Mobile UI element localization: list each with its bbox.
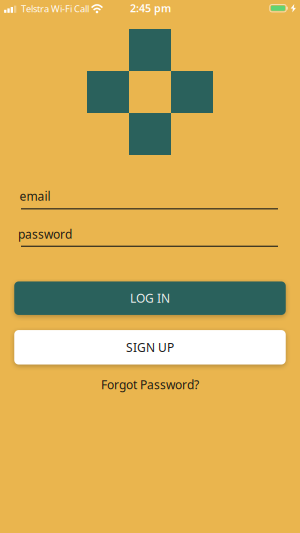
button[interactable]: SIGN UP [14, 330, 286, 365]
button[interactable]: LOG IN [14, 281, 286, 315]
staticText: password [18, 226, 72, 242]
button[interactable]: Forgot Password? [101, 376, 199, 392]
staticText: Forgot Password? [101, 376, 199, 392]
staticText: SIGN UP [126, 339, 174, 355]
staticText: LOG IN [130, 290, 170, 306]
staticText: 2:45 pm [130, 1, 171, 15]
staticText: Telstra Wi-Fi Call [21, 2, 89, 15]
staticText: email [19, 188, 50, 204]
